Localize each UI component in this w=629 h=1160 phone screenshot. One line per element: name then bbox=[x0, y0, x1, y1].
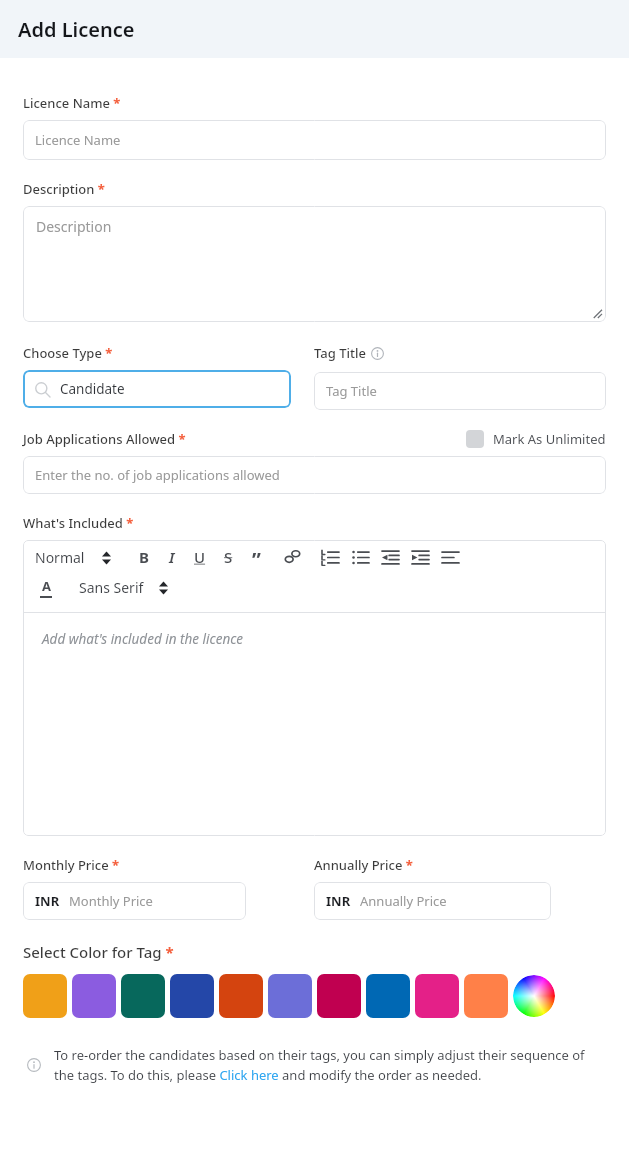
staticText: Licence Name * bbox=[23, 94, 121, 112]
button[interactable]: Tag colour bbox=[121, 974, 165, 1018]
button[interactable]: Tag colour bbox=[170, 974, 214, 1018]
staticText: What's Included * bbox=[23, 514, 134, 532]
button[interactable]: Tag colour bbox=[464, 974, 508, 1018]
button[interactable]: Tag colour bbox=[72, 974, 116, 1018]
button[interactable]: Strikethrough bbox=[217, 546, 239, 568]
button[interactable]: Blockquote bbox=[245, 546, 267, 568]
staticText: B bbox=[139, 547, 149, 567]
staticText: Monthly Price bbox=[69, 892, 153, 910]
staticText: INR bbox=[35, 892, 60, 910]
button[interactable]: INR bbox=[23, 882, 246, 920]
button[interactable]: Licence Name bbox=[23, 120, 606, 160]
staticText: Tag Title bbox=[314, 344, 366, 362]
staticText: Sans Serif bbox=[79, 578, 144, 597]
button[interactable]: Custom colour picker bbox=[513, 975, 555, 1017]
button[interactable]: Align bbox=[439, 546, 461, 568]
button[interactable]: Bulleted list bbox=[349, 546, 371, 568]
staticText: U bbox=[194, 547, 206, 567]
button[interactable]: Add what's included in the licence bbox=[23, 613, 606, 836]
staticText: Monthly Price * bbox=[23, 856, 120, 874]
staticText: Tag Title bbox=[326, 382, 377, 400]
staticText: ” bbox=[252, 546, 261, 568]
staticText: INR bbox=[326, 892, 351, 910]
staticText: Choose Type * bbox=[23, 344, 113, 362]
staticText: Enter the no. of job applications allowe… bbox=[35, 466, 280, 484]
staticText: Annually Price * bbox=[314, 856, 413, 874]
button[interactable]: Tag colour bbox=[219, 974, 263, 1018]
staticText: Add what's included in the licence bbox=[42, 630, 244, 648]
button[interactable]: Bold bbox=[133, 546, 155, 568]
staticText: Candidate bbox=[60, 380, 125, 398]
button[interactable]: Candidate bbox=[23, 370, 291, 408]
button[interactable]: Tag colour bbox=[268, 974, 312, 1018]
button[interactable]: Enter the no. of job applications allowe… bbox=[23, 456, 606, 494]
button[interactable]: Numbered list bbox=[319, 546, 341, 568]
staticText: Select Color for Tag * bbox=[23, 942, 174, 962]
button[interactable]: Sans Serif bbox=[79, 578, 168, 597]
button[interactable]: Increase indent bbox=[409, 546, 431, 568]
button[interactable]: Text color bbox=[35, 576, 57, 598]
button[interactable]: Tag colour bbox=[366, 974, 410, 1018]
staticText: To re-order the candidates based on thei… bbox=[54, 1046, 606, 1084]
staticText: I bbox=[169, 547, 175, 567]
staticText: Description bbox=[36, 217, 112, 236]
staticText: S bbox=[224, 547, 233, 567]
button[interactable]: Tag colour bbox=[317, 974, 361, 1018]
staticText: Normal bbox=[35, 548, 85, 567]
button[interactable]: Italic bbox=[161, 546, 183, 568]
staticText: Annually Price bbox=[360, 892, 447, 910]
staticText: Description * bbox=[23, 180, 105, 198]
staticText: Mark As Unlimited bbox=[493, 430, 606, 448]
button[interactable]: Normal bbox=[35, 548, 111, 567]
staticText: Licence Name bbox=[35, 131, 121, 149]
button[interactable]: Tag colour bbox=[23, 974, 67, 1018]
button[interactable]: Description bbox=[23, 206, 606, 322]
button[interactable]: Tag colour bbox=[415, 974, 459, 1018]
button[interactable]: Underline bbox=[189, 546, 211, 568]
button[interactable]: INR bbox=[314, 882, 551, 920]
staticText: Add Licence bbox=[18, 16, 135, 43]
staticText: A bbox=[42, 577, 51, 595]
button[interactable]: Mark As Unlimited bbox=[466, 430, 606, 448]
button[interactable]: Decrease indent bbox=[379, 546, 401, 568]
staticText: Job Applications Allowed * bbox=[23, 430, 186, 448]
button[interactable]: Tag Title bbox=[314, 372, 606, 410]
button[interactable]: Insert link bbox=[281, 546, 303, 568]
